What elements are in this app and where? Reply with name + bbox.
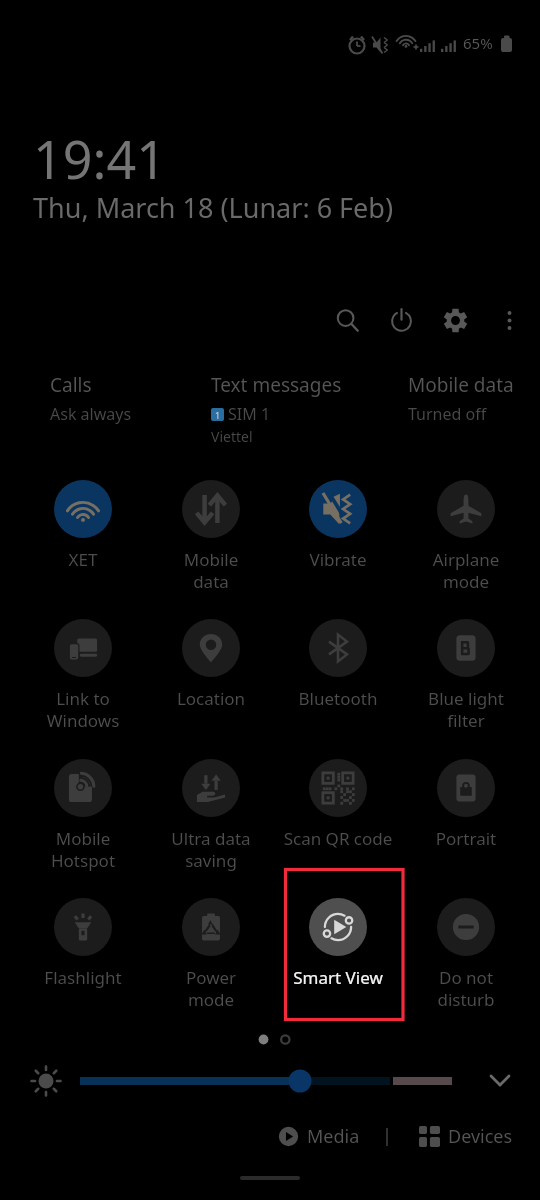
staticText: Power mode	[151, 966, 271, 1011]
staticText: Link to Windows	[23, 687, 143, 732]
button[interactable]: Settings	[428, 300, 482, 340]
staticText: Viettel	[211, 427, 253, 446]
button[interactable]: Portrait	[406, 759, 526, 850]
staticText: Media	[307, 1124, 360, 1149]
staticText: Bluetooth	[278, 687, 398, 710]
staticText: Turned off	[408, 403, 487, 425]
staticText: Calls	[50, 372, 92, 398]
button[interactable]: More options	[482, 300, 536, 340]
button[interactable]: Bluetooth	[278, 619, 398, 710]
staticText: Mobile Hotspot	[23, 827, 143, 872]
staticText: Portrait	[406, 827, 526, 850]
button[interactable]: Mobile data	[151, 480, 271, 593]
staticText: 1	[215, 409, 221, 421]
button[interactable]: Devices	[413, 1118, 519, 1155]
staticText: Devices	[448, 1124, 513, 1149]
staticText: XET	[23, 548, 143, 571]
button[interactable]: Flashlight	[23, 898, 143, 989]
button[interactable]: Search	[320, 300, 374, 340]
staticText: Blue light filter	[406, 687, 526, 732]
button[interactable]: Do not disturb	[406, 898, 526, 1011]
button[interactable]: Link to Windows	[23, 619, 143, 732]
staticText: 19:41	[33, 123, 166, 194]
staticText: Smart View	[278, 966, 398, 989]
button[interactable]: Brightness	[60, 1062, 470, 1102]
staticText: Mobile data	[151, 548, 271, 593]
button[interactable]: Media	[272, 1118, 366, 1155]
button[interactable]: Power	[374, 300, 428, 340]
button[interactable]: Text messages	[211, 372, 342, 446]
staticText: Do not disturb	[406, 966, 526, 1011]
staticText: Ask always	[50, 403, 132, 425]
staticText: 65%	[463, 33, 493, 53]
staticText: Scan QR code	[278, 827, 398, 850]
button[interactable]: XET	[23, 480, 143, 571]
button[interactable]: Calls	[50, 372, 132, 425]
button[interactable]: Blue light filter	[406, 619, 526, 732]
button[interactable]: Scan QR code	[278, 759, 398, 850]
button[interactable]: Vibrate	[278, 480, 398, 571]
button[interactable]: Power mode	[151, 898, 271, 1011]
staticText: Flashlight	[23, 966, 143, 989]
button[interactable]: Mobile data	[408, 372, 514, 425]
button[interactable]: Expand brightness settings	[480, 1062, 520, 1102]
button[interactable]: Airplane mode	[406, 480, 526, 593]
staticText: Location	[151, 687, 271, 710]
staticText: SIM 1	[228, 403, 271, 425]
staticText: Mobile data	[408, 372, 514, 398]
button[interactable]: Mobile Hotspot	[23, 759, 143, 872]
staticText: Vibrate	[278, 548, 398, 571]
button[interactable]: Smart View	[278, 898, 398, 989]
staticText: Thu, March 18 (Lunar: 6 Feb)	[33, 189, 394, 226]
staticText: Ultra data saving	[151, 827, 271, 872]
staticText: Airplane mode	[406, 548, 526, 593]
button[interactable]: Ultra data saving	[151, 759, 271, 872]
button[interactable]: Location	[151, 619, 271, 710]
staticText: Text messages	[211, 372, 342, 398]
